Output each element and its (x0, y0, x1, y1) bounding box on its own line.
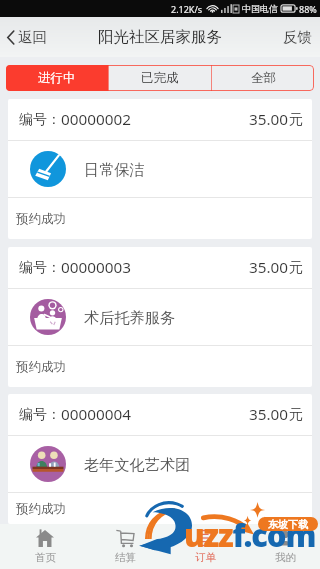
button[interactable]: 订单 (160, 524, 240, 569)
staticText: 00000003 (61, 257, 131, 278)
staticText: 已完成 (141, 70, 179, 86)
button[interactable]: 反馈 (275, 24, 320, 50)
button[interactable]: 编号： (8, 99, 312, 239)
staticText: 元 (289, 406, 303, 424)
staticText: 进行中 (38, 70, 76, 86)
staticText: 中国电信 (242, 3, 278, 14)
staticText: 2.12K/s (171, 3, 203, 15)
button[interactable]: 全部 (212, 65, 314, 91)
staticText: 35.00 (249, 109, 289, 130)
staticText: 订单 (195, 551, 216, 564)
staticText: 老年文化艺术团 (84, 455, 191, 474)
staticText: 88% (299, 3, 317, 15)
staticText: 返回 (18, 28, 47, 46)
button[interactable]: 编号： (8, 394, 312, 524)
staticText: 00000004 (61, 404, 131, 425)
button[interactable]: 进行中 (6, 65, 108, 91)
button[interactable]: 返回 (0, 24, 55, 50)
other: 首页 (36, 529, 54, 547)
staticText: 元 (289, 111, 303, 129)
staticText: 全部 (251, 70, 276, 86)
staticText: uzzf.com (184, 514, 316, 556)
other: 结算 (116, 529, 134, 547)
button[interactable]: 编号： (8, 247, 312, 387)
staticText: 预约成功 (16, 211, 66, 227)
staticText: 日常保洁 (84, 160, 145, 179)
staticText: 00000002 (61, 109, 131, 130)
staticText: 术后托养服务 (84, 308, 176, 327)
other: 订单 (196, 529, 214, 547)
staticText: 预约成功 (16, 359, 66, 375)
staticText: 35.00 (249, 257, 289, 278)
button[interactable]: 结算 (80, 524, 160, 569)
staticText: 东坡下载 (268, 518, 308, 531)
staticText: 编号： (19, 111, 61, 129)
staticText: 元 (289, 259, 303, 277)
staticText: 结算 (115, 551, 136, 564)
staticText: 反馈 (283, 28, 312, 46)
staticText: 预约成功 (16, 501, 66, 517)
staticText: 阳光社区居家服务 (98, 27, 222, 47)
button[interactable]: 首页 (0, 524, 80, 569)
button[interactable]: 已完成 (109, 65, 211, 91)
button[interactable]: 我的 (240, 524, 320, 569)
staticText: 首页 (35, 551, 56, 564)
staticText: 编号： (19, 259, 61, 277)
staticText: 35.00 (249, 404, 289, 425)
staticText: 我的 (275, 551, 296, 564)
staticText: 编号： (19, 406, 61, 424)
other: 我的 (276, 529, 294, 547)
